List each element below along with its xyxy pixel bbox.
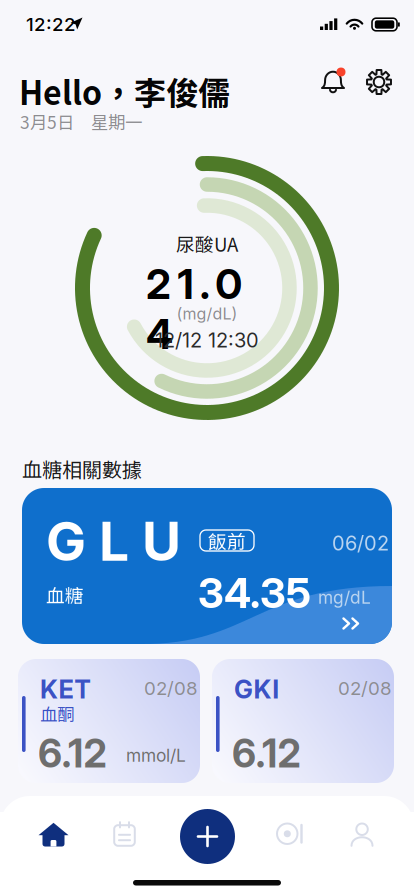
staticText: 飯前	[208, 527, 246, 554]
button[interactable]: Profile	[350, 822, 374, 847]
button[interactable]: GKI	[212, 659, 394, 783]
staticText: 3月5日 星期一	[20, 109, 142, 134]
button[interactable]: Add	[180, 809, 235, 864]
staticText: GLU	[46, 509, 181, 573]
staticText: 02/08	[338, 677, 392, 700]
staticText: 6.12	[38, 730, 106, 777]
button[interactable]: Devices	[277, 821, 304, 847]
staticText: mg/dL	[318, 587, 371, 608]
staticText: GKI	[234, 674, 279, 705]
button[interactable]: GLU	[22, 488, 392, 644]
staticText: 血糖相關數據	[22, 454, 142, 483]
staticText: KET	[40, 674, 91, 705]
staticText: Hello，李俊儒	[19, 68, 230, 114]
button[interactable]: KET	[18, 659, 200, 783]
button[interactable]: Notifications	[320, 68, 346, 95]
button[interactable]: Settings	[366, 69, 392, 95]
staticText: (mg/dL)	[176, 304, 237, 323]
staticText: 06/02	[332, 531, 389, 555]
staticText: 02/08	[144, 677, 198, 700]
button[interactable]: Home	[38, 822, 69, 847]
staticText: 6.12	[232, 730, 300, 777]
staticText: 21.04	[146, 259, 276, 309]
staticText: mmol/L	[126, 745, 186, 766]
button[interactable]: Records	[113, 821, 136, 847]
staticText: 血糖	[46, 581, 84, 608]
staticText: 12/12 12:30	[155, 328, 259, 352]
staticText: 12:22	[26, 13, 76, 36]
staticText: 血酮	[40, 701, 74, 726]
staticText: 34.35	[198, 568, 311, 618]
staticText: 尿酸UA	[176, 230, 238, 257]
